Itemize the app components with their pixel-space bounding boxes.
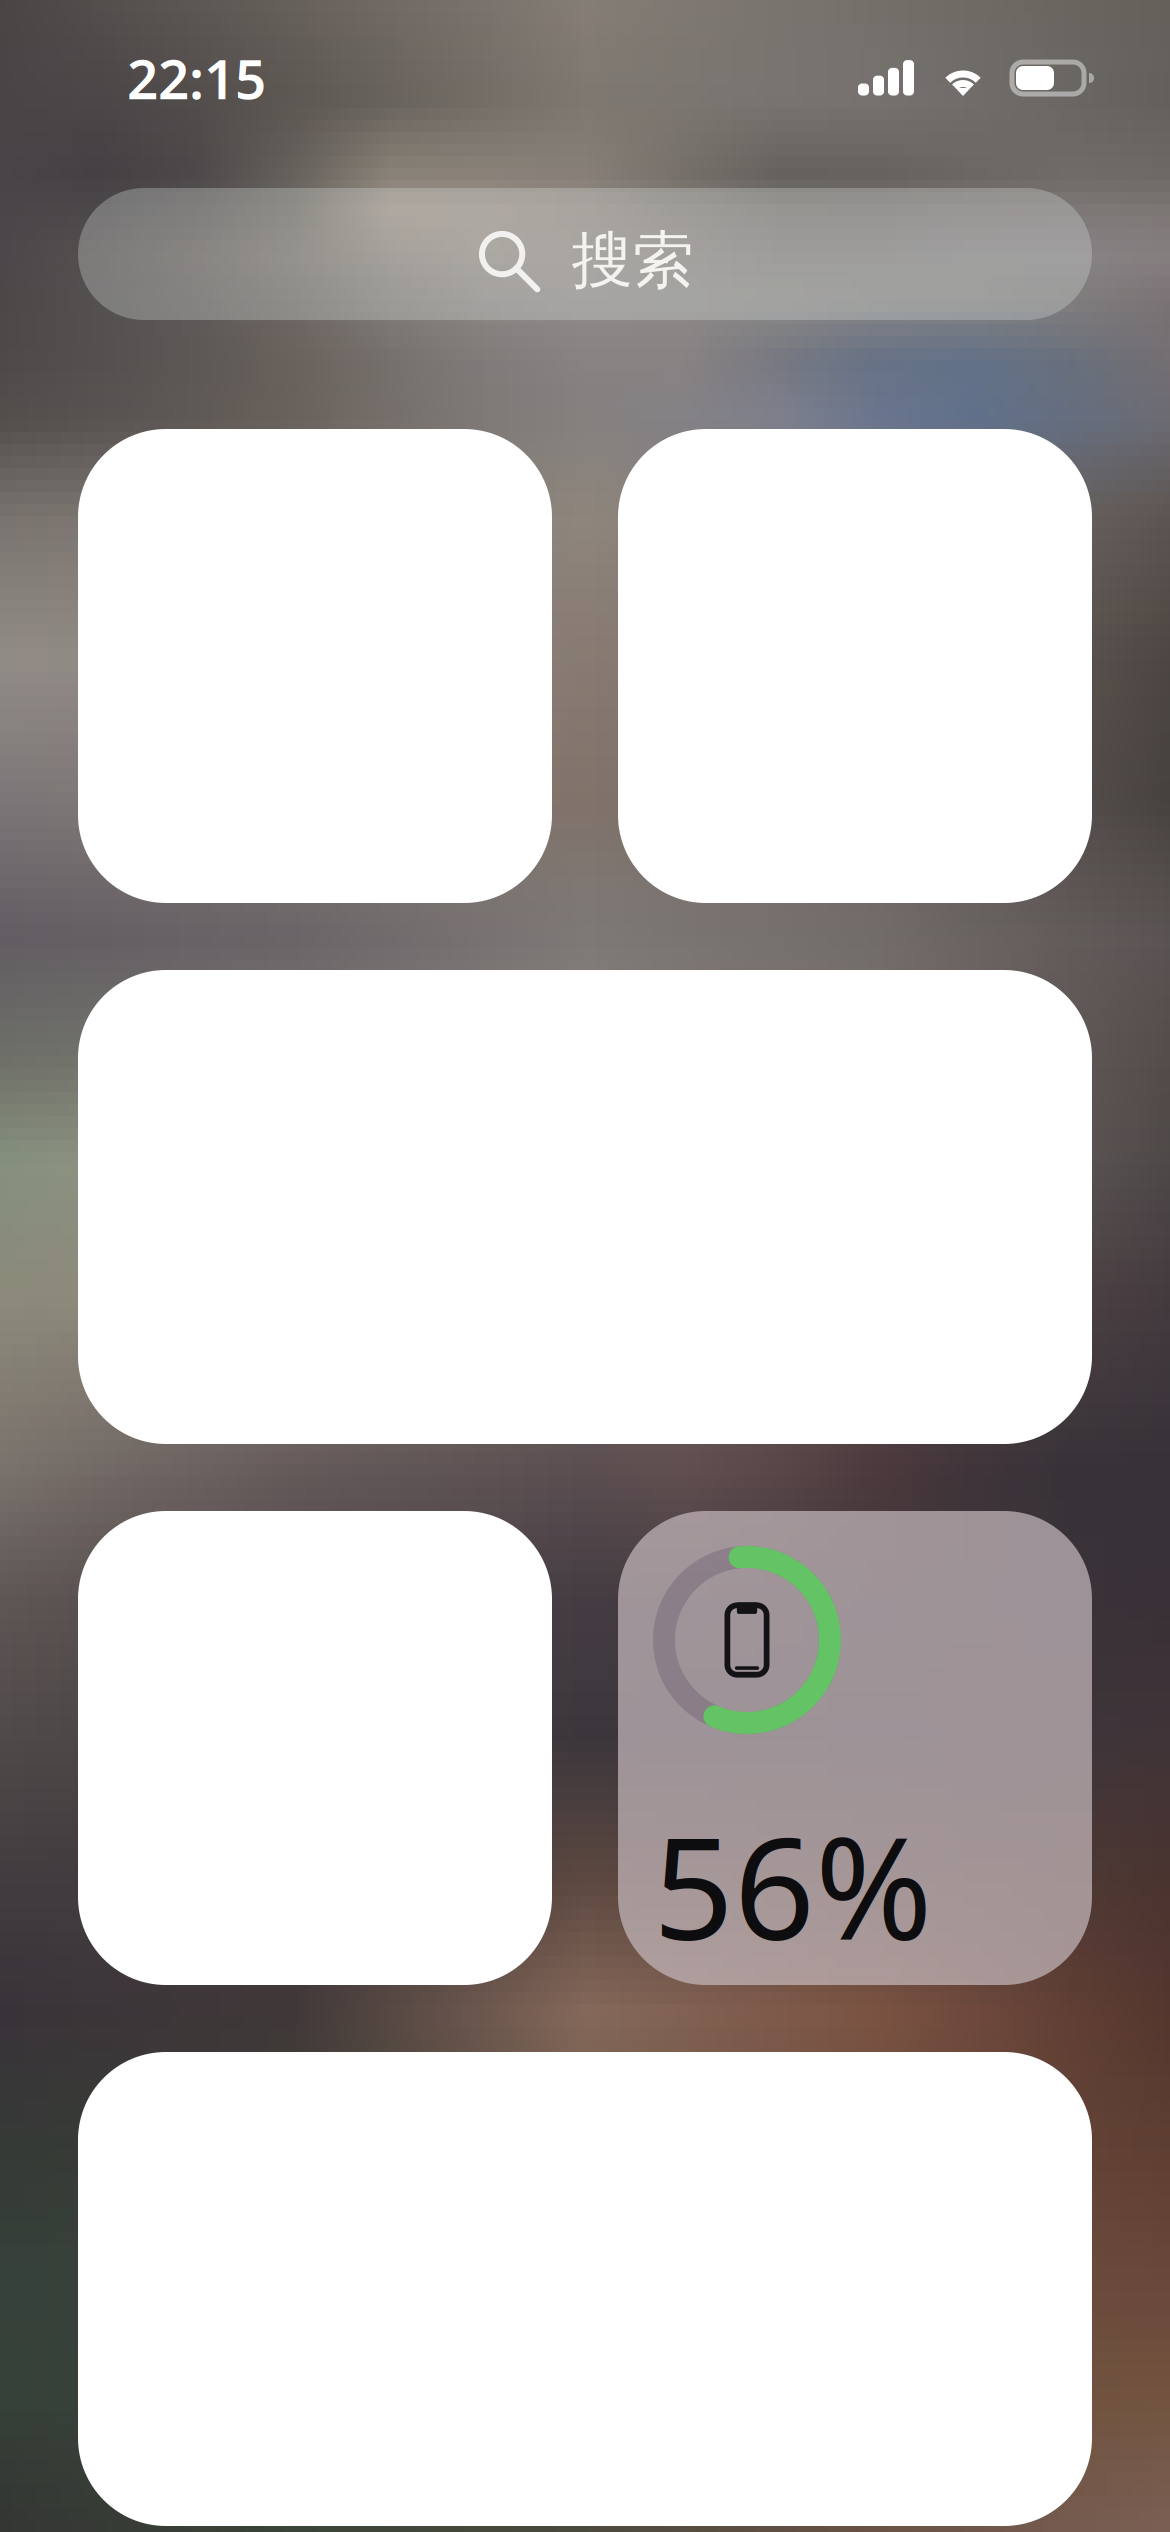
button[interactable]: 56% xyxy=(618,1511,1092,1985)
button[interactable]: Widget xyxy=(78,970,1092,1444)
button[interactable]: Widget xyxy=(78,2052,1092,2526)
button[interactable]: 搜索 xyxy=(78,188,1092,320)
staticText: 56% xyxy=(653,1791,932,1979)
staticText: 22:15 xyxy=(127,42,266,114)
button[interactable]: Widget xyxy=(78,429,552,903)
button[interactable]: Widget xyxy=(78,1511,552,1985)
staticText: 搜索 xyxy=(571,223,693,298)
button[interactable]: Widget xyxy=(618,429,1092,903)
